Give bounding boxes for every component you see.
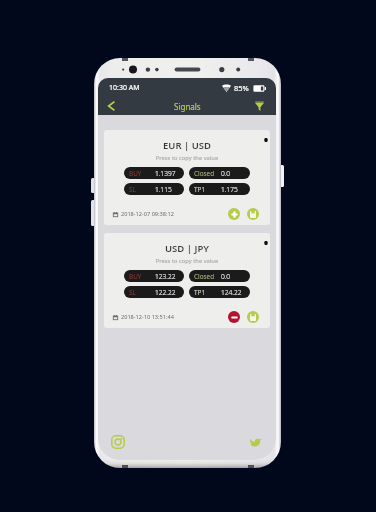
button[interactable]: SL (124, 183, 184, 195)
staticText: Closed (194, 169, 215, 178)
staticText: 1.1397 (155, 169, 176, 178)
button[interactable]: BUY (124, 167, 184, 179)
staticText: 123.22 (155, 272, 176, 281)
staticText: 2018-12-10 13:51:44 (121, 313, 174, 321)
staticText: Press to copy the value (104, 257, 270, 265)
button[interactable]: USD | JPY (104, 233, 270, 328)
button[interactable]: Save (247, 208, 259, 220)
button[interactable]: Close signal (228, 311, 240, 323)
button[interactable]: Twitter (247, 433, 265, 451)
button[interactable]: Add signal (228, 208, 240, 220)
staticText: USD | JPY (104, 242, 270, 255)
staticText: 122.22 (155, 288, 176, 297)
staticText: Signals (174, 101, 201, 112)
staticText: TP1 (194, 185, 206, 194)
staticText: Closed (194, 272, 215, 281)
button[interactable]: Instagram (109, 433, 127, 451)
button[interactable]: TP1 (189, 183, 250, 195)
staticText: 124.22 (221, 288, 242, 297)
staticText: BUY (129, 272, 142, 281)
button[interactable]: SL (124, 286, 184, 298)
staticText: TP1 (194, 288, 206, 297)
button[interactable]: Save (247, 311, 259, 323)
button[interactable]: Back (98, 97, 123, 115)
button[interactable]: Closed (189, 270, 250, 282)
staticText: SL (129, 185, 136, 194)
staticText: 2018-12-07 09:38:12 (121, 210, 174, 218)
staticText: Press to copy the value (104, 154, 270, 162)
staticText: EUR | USD (104, 139, 270, 152)
staticText: 10:30 AM (109, 83, 140, 93)
staticText: 0.0 (221, 272, 231, 281)
staticText: BUY (129, 169, 142, 178)
button[interactable]: BUY (124, 270, 184, 282)
button[interactable]: EUR | USD (104, 130, 270, 225)
staticText: 1.175 (221, 185, 238, 194)
button[interactable]: TP1 (189, 286, 250, 298)
staticText: 85% (234, 83, 249, 93)
button[interactable]: Filter (251, 97, 276, 115)
staticText: 1.115 (155, 185, 172, 194)
staticText: 0.0 (221, 169, 231, 178)
staticText: SL (129, 288, 136, 297)
button[interactable]: Closed (189, 167, 250, 179)
